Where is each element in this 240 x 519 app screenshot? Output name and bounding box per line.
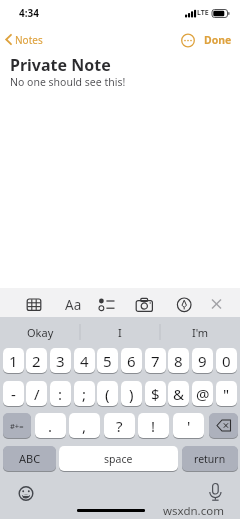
staticText: Notes (15, 33, 43, 47)
button[interactable] (135, 296, 154, 314)
button[interactable] (209, 413, 238, 438)
staticText: ! (151, 416, 156, 436)
button[interactable]: 7 (145, 348, 166, 373)
button[interactable]: 0 (216, 348, 237, 373)
button[interactable]: return (182, 446, 238, 471)
staticText: 7 (151, 351, 160, 371)
button[interactable]: 2 (26, 348, 47, 373)
staticText: ? (116, 416, 123, 436)
staticText: ; (82, 384, 87, 404)
staticText: - (11, 384, 16, 404)
staticText: 6 (127, 351, 136, 371)
button[interactable]: I (80, 317, 160, 347)
staticText: @ (196, 384, 210, 404)
staticText: & (173, 384, 184, 404)
button[interactable]: / (26, 381, 47, 406)
staticText: ' (187, 416, 191, 436)
button[interactable]: " (216, 381, 237, 406)
button[interactable]: ' (173, 413, 204, 438)
button[interactable]: Done (200, 31, 236, 48)
button[interactable]: #+= (3, 413, 31, 438)
staticText: return (194, 452, 226, 466)
staticText: 0 (222, 351, 231, 371)
staticText: 4 (80, 351, 89, 371)
button[interactable] (176, 296, 193, 314)
button[interactable]: & (168, 381, 189, 406)
staticText: wsxdn.com (163, 503, 224, 519)
staticText: / (34, 384, 40, 404)
button[interactable]: I'm (160, 317, 240, 347)
button[interactable]: 8 (168, 348, 189, 373)
staticText: I'm (192, 325, 209, 340)
button[interactable]: $ (145, 381, 166, 406)
button[interactable] (207, 482, 224, 502)
staticText: 1 (9, 351, 18, 371)
button[interactable]: Notes (2, 31, 48, 49)
button[interactable]: Okay (0, 317, 80, 347)
button[interactable]: 6 (121, 348, 142, 373)
button[interactable] (98, 296, 117, 314)
staticText: $ (151, 384, 160, 404)
staticText: Done (204, 33, 232, 47)
button[interactable]: ? (104, 413, 135, 438)
button[interactable]: - (3, 381, 24, 406)
staticText: : (58, 384, 63, 404)
staticText: Private Note (10, 54, 111, 76)
staticText: space (104, 452, 133, 466)
staticText: Okay (27, 325, 54, 340)
button[interactable]: @ (192, 381, 213, 406)
button[interactable]: space (59, 446, 178, 471)
button[interactable]: , (69, 413, 100, 438)
button[interactable]: 1 (3, 348, 24, 373)
button[interactable]: ! (138, 413, 169, 438)
button[interactable]: Aa (61, 294, 85, 315)
button[interactable]: 4 (74, 348, 95, 373)
staticText: , (82, 416, 87, 436)
button[interactable]: 5 (97, 348, 118, 373)
button[interactable] (208, 295, 225, 313)
staticText: 4:34 (19, 6, 39, 20)
staticText: . (48, 416, 53, 436)
staticText: " (223, 384, 230, 404)
button[interactable] (180, 33, 196, 49)
staticText: 9 (198, 351, 207, 371)
staticText: Aa (65, 296, 82, 314)
button[interactable]: 9 (192, 348, 213, 373)
button[interactable]: . (35, 413, 66, 438)
button[interactable]: ( (97, 381, 118, 406)
staticText: 3 (56, 351, 65, 371)
staticText: LTE (197, 8, 209, 18)
button[interactable] (18, 485, 34, 501)
staticText: #+= (10, 421, 24, 431)
button[interactable] (25, 296, 43, 314)
staticText: No one should see this! (10, 75, 126, 89)
staticText: I (118, 325, 122, 340)
button[interactable]: ; (74, 381, 95, 406)
staticText: ( (105, 384, 110, 404)
button[interactable]: : (50, 381, 71, 406)
staticText: 8 (174, 351, 183, 371)
staticText: ABC (19, 451, 41, 466)
staticText: 2 (32, 351, 41, 371)
button[interactable]: ) (121, 381, 142, 406)
staticText: ) (129, 384, 134, 404)
button[interactable]: ABC (3, 446, 56, 471)
button[interactable]: 3 (50, 348, 71, 373)
staticText: 5 (103, 351, 112, 371)
